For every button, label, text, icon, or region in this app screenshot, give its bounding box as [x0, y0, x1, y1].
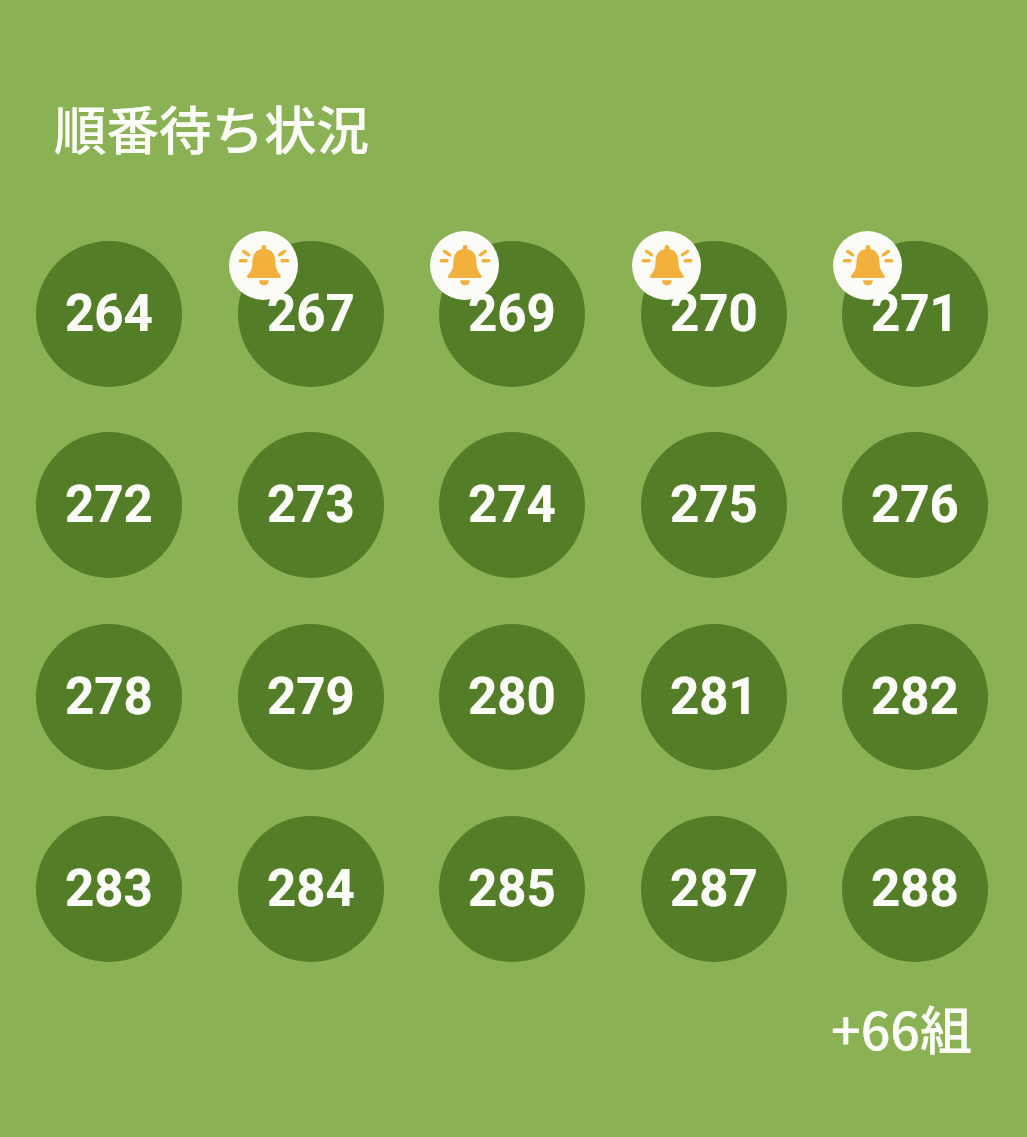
staticText: 276 — [871, 475, 959, 535]
button[interactable]: 264 — [36, 241, 182, 387]
staticText: 280 — [468, 667, 556, 727]
button[interactable]: 267 — [238, 241, 384, 387]
staticText: 274 — [468, 475, 556, 535]
button[interactable]: 269 — [439, 241, 585, 387]
button[interactable]: 287 — [641, 816, 787, 962]
staticText: 267 — [267, 284, 355, 344]
staticText: 273 — [267, 475, 355, 535]
button[interactable]: 282 — [842, 624, 988, 770]
button[interactable]: 285 — [439, 816, 585, 962]
button[interactable]: Notification on for ticket 269 — [430, 231, 499, 300]
staticText: 264 — [65, 284, 153, 344]
staticText: 284 — [267, 859, 355, 919]
staticText: 281 — [670, 667, 758, 727]
staticText: 285 — [468, 859, 556, 919]
staticText: 275 — [670, 475, 758, 535]
staticText: 288 — [871, 859, 959, 919]
staticText: 282 — [871, 667, 959, 727]
staticText: 順番待ち状況 — [54, 89, 370, 165]
button[interactable]: Notification on for ticket 271 — [833, 231, 902, 300]
button[interactable]: 271 — [842, 241, 988, 387]
button[interactable]: Notification on for ticket 270 — [632, 231, 701, 300]
button[interactable]: 272 — [36, 432, 182, 578]
staticText: 283 — [65, 859, 153, 919]
button[interactable]: 275 — [641, 432, 787, 578]
button[interactable]: Notification on for ticket 267 — [229, 231, 298, 300]
staticText: 271 — [871, 284, 959, 344]
button[interactable]: 274 — [439, 432, 585, 578]
button[interactable]: 281 — [641, 624, 787, 770]
button[interactable]: 276 — [842, 432, 988, 578]
button[interactable]: +66組 — [831, 990, 972, 1065]
button[interactable]: 278 — [36, 624, 182, 770]
button[interactable]: 288 — [842, 816, 988, 962]
staticText: 269 — [468, 284, 556, 344]
staticText: 279 — [267, 667, 355, 727]
staticText: +66組 — [831, 990, 972, 1065]
staticText: 272 — [65, 475, 153, 535]
button[interactable]: 273 — [238, 432, 384, 578]
staticText: 287 — [670, 859, 758, 919]
button[interactable]: 270 — [641, 241, 787, 387]
staticText: 278 — [65, 667, 153, 727]
button[interactable]: 279 — [238, 624, 384, 770]
button[interactable]: 280 — [439, 624, 585, 770]
staticText: 270 — [670, 284, 758, 344]
button[interactable]: 283 — [36, 816, 182, 962]
button[interactable]: 284 — [238, 816, 384, 962]
